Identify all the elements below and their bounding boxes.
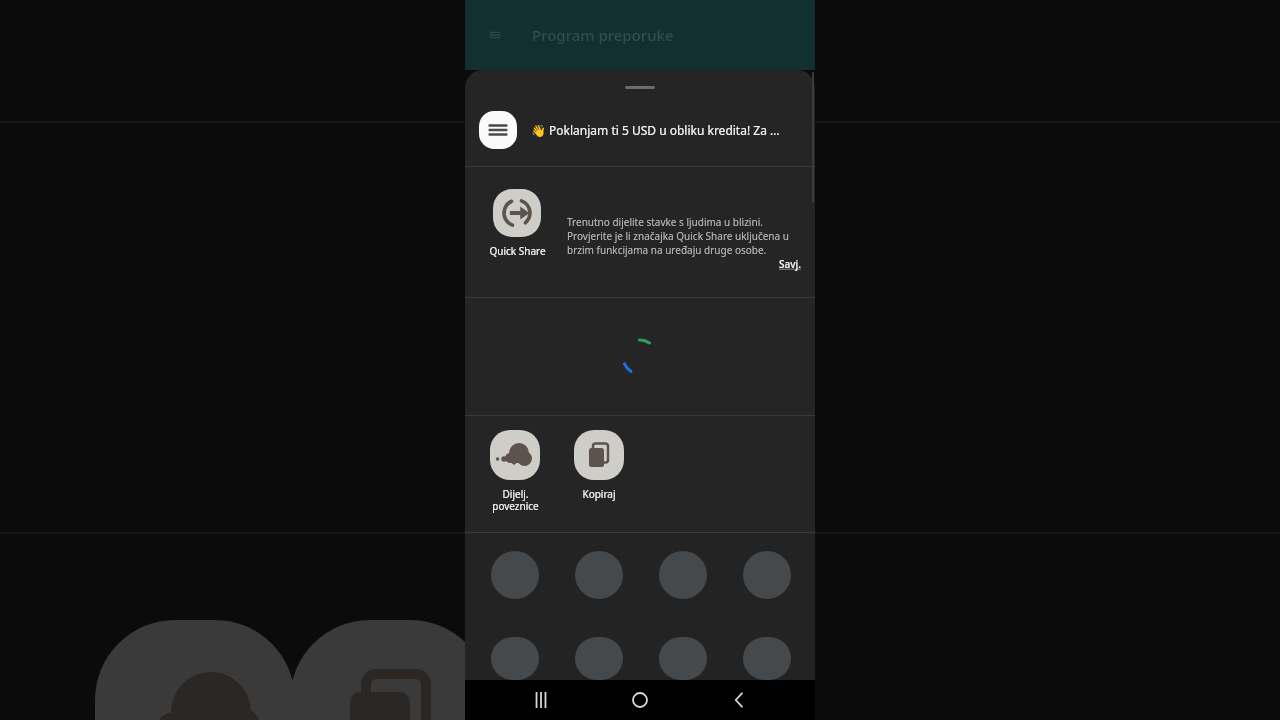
staticText: 👋 Poklanjam ti 5 USD u obliku kredita! Z… — [531, 122, 780, 138]
staticText: Trenutno dijelite stavke s ljudima u bli… — [567, 215, 801, 257]
button[interactable]: Home — [617, 680, 663, 720]
button[interactable]: 👋 Poklanjam ti 5 USD u obliku kredita! Z… — [465, 94, 815, 166]
button[interactable]: Share link — [473, 430, 557, 513]
button[interactable]: Quick Share — [465, 167, 815, 297]
staticText: Program preporuke — [532, 25, 674, 45]
button[interactable]: Recents — [518, 680, 564, 720]
button[interactable]: Back — [716, 680, 762, 720]
button[interactable]: Copy — [557, 430, 641, 501]
button[interactable]: Savj. — [779, 257, 801, 271]
staticText: Kopiraj — [582, 487, 616, 501]
staticText: Quick Share — [489, 244, 546, 258]
staticText: Dijelj. poveznice — [492, 487, 539, 513]
button[interactable]: Menu — [478, 18, 512, 52]
